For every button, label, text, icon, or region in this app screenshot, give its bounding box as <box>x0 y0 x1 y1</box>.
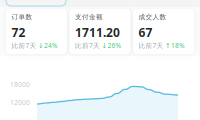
staticText: 比前7天 <box>75 41 100 50</box>
staticText: 67 <box>138 24 152 40</box>
staticText: 成交人数 <box>138 13 166 21</box>
staticText: ↑18% <box>165 41 185 50</box>
staticText: 支付金额 <box>75 13 103 21</box>
staticText: 18000 <box>10 80 30 89</box>
button[interactable]: 支付金额 <box>69 9 130 54</box>
staticText: 72 <box>11 24 25 40</box>
staticText: 比前7天 <box>11 41 36 50</box>
staticText: 1711.20 <box>75 24 120 40</box>
staticText: 比前7天 <box>138 41 163 50</box>
staticText: 订单数 <box>11 13 32 21</box>
staticText: 12000 <box>10 98 30 107</box>
button[interactable]: 订单数 <box>6 9 67 54</box>
staticText: ↓26% <box>101 41 121 50</box>
button[interactable]: 成交人数 <box>133 9 194 54</box>
staticText: ↓24% <box>38 41 58 50</box>
